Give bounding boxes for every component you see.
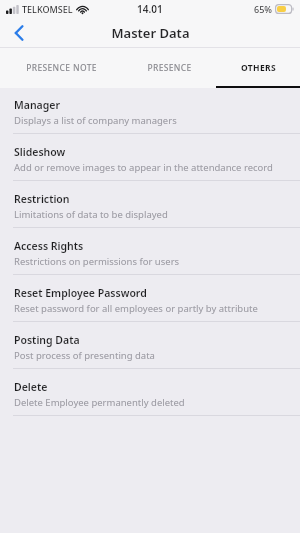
staticText: Access Rights [14, 239, 84, 253]
button[interactable]: Slideshow [0, 138, 300, 181]
staticText: Delete Employee permanently deleted [14, 396, 185, 409]
staticText: TELKOMSEL [22, 3, 73, 15]
button[interactable]: PRESENCE [123, 48, 216, 88]
staticText: 65% [254, 3, 272, 15]
staticText: Master Data [111, 24, 190, 42]
staticText: Post process of presenting data [14, 349, 155, 362]
staticText: Reset Employee Password [14, 286, 147, 300]
staticText: Manager [14, 98, 61, 112]
staticText: Posting Data [14, 333, 80, 347]
staticText: PRESENCE NOTE [26, 62, 97, 74]
staticText: Delete [14, 380, 48, 394]
staticText: Slideshow [14, 145, 66, 159]
staticText: 14.01 [137, 2, 163, 16]
button[interactable]: Back [0, 18, 38, 47]
button[interactable]: Access Rights [0, 232, 300, 275]
staticText: Limitations of data to be displayed [14, 208, 168, 221]
button[interactable]: Delete [0, 373, 300, 416]
staticText: Displays a list of company managers [14, 114, 177, 127]
staticText: Add or remove images to appear in the at… [14, 161, 273, 174]
button[interactable]: Posting Data [0, 326, 300, 369]
staticText: Restrictions on permissions for users [14, 255, 180, 268]
staticText: Reset password for all employees or part… [14, 302, 258, 315]
staticText: PRESENCE [147, 62, 192, 74]
button[interactable]: Restriction [0, 185, 300, 228]
button[interactable]: OTHERS [216, 48, 300, 88]
staticText: OTHERS [241, 62, 276, 74]
button[interactable]: Reset Employee Password [0, 279, 300, 322]
staticText: Restriction [14, 192, 70, 206]
button[interactable]: Manager [0, 91, 300, 134]
button[interactable]: PRESENCE NOTE [0, 48, 123, 88]
